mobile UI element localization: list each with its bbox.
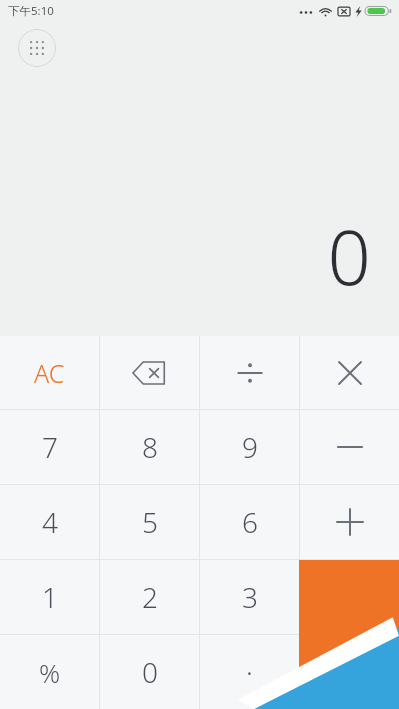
staticText: 0 [327,204,371,308]
button[interactable]: Multiply [300,336,399,409]
staticText: · [246,653,253,691]
button[interactable]: 2 [100,560,199,634]
staticText: 2 [142,578,158,616]
button[interactable]: 9 [200,410,299,484]
button[interactable]: Plus [300,485,399,559]
staticText: 3 [242,578,258,616]
staticText: 5 [142,503,158,541]
button[interactable]: Equals [299,560,399,709]
staticText: 0 [142,653,158,691]
button[interactable]: Keypad modes [18,29,56,67]
staticText: 6 [242,503,258,541]
button[interactable]: 0 [100,635,199,709]
staticText: 7 [42,428,58,466]
staticText: AC [34,356,65,390]
button[interactable]: Backspace [100,336,199,409]
button[interactable]: 5 [100,485,199,559]
button[interactable]: 4 [0,485,99,559]
staticText: 1 [42,578,58,616]
button[interactable]: Divide [200,336,299,409]
staticText: % [39,655,61,690]
button[interactable]: AC [0,336,99,409]
button[interactable]: 3 [200,560,299,634]
staticText: 9 [242,428,258,466]
button[interactable]: 8 [100,410,199,484]
staticText: 4 [42,503,58,541]
button[interactable]: 1 [0,560,99,634]
button[interactable]: · [200,635,299,709]
button[interactable]: 6 [200,485,299,559]
staticText: 8 [142,428,158,466]
button[interactable]: Minus [300,410,399,484]
staticText: 下午5:10 [8,3,54,19]
button[interactable]: % [0,635,99,709]
button[interactable]: 7 [0,410,99,484]
